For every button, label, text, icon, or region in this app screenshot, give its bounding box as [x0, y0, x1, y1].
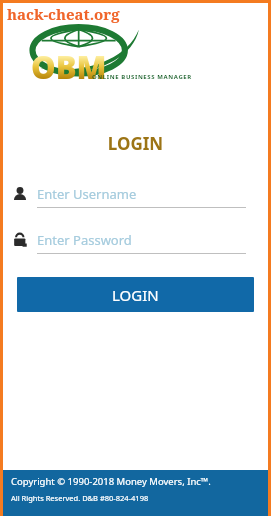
- button[interactable]: LOGIN: [17, 277, 254, 312]
- staticText: LOGIN: [3, 132, 268, 155]
- staticText: hack-cheat.org: [7, 4, 120, 24]
- staticText: All Rights Reserved. D&B #80-824-4198: [11, 493, 149, 503]
- staticText: LOGIN: [112, 285, 159, 305]
- staticText: ONLINE BUSINESS MANAGER: [92, 73, 192, 81]
- staticText: Enter Username: [37, 185, 137, 203]
- button[interactable]: Password: [3, 226, 268, 254]
- staticText: Enter Password: [37, 231, 132, 249]
- other: Username: [11, 185, 29, 203]
- button[interactable]: Username: [3, 180, 268, 208]
- other: Password: [11, 231, 29, 249]
- staticText: OBM: [31, 46, 107, 88]
- staticText: Copyright © 1990-2018 Money Movers, Inc™…: [11, 475, 211, 488]
